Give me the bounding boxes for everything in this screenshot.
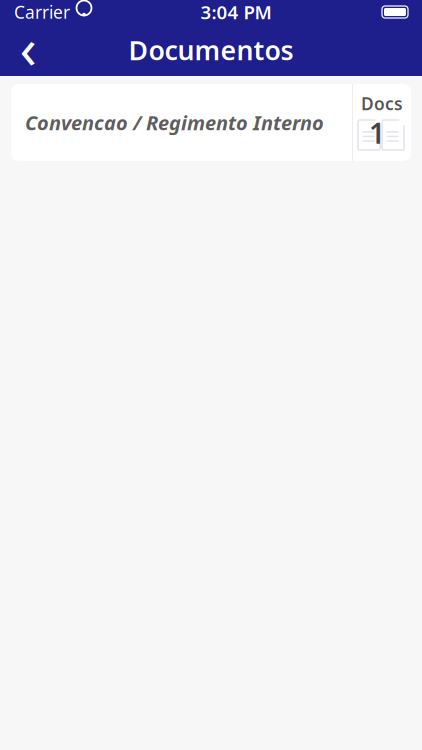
staticText: 1 bbox=[369, 114, 385, 152]
staticText: Documentos bbox=[128, 32, 293, 68]
staticText: Docs bbox=[361, 92, 403, 115]
staticText: Carrier bbox=[14, 0, 70, 23]
staticText: Convencao / Regimento Interno bbox=[25, 109, 324, 136]
staticText: 3:04 PM bbox=[200, 0, 271, 24]
staticText: ‹ bbox=[19, 10, 36, 84]
button[interactable]: Convencao / Regimento Interno bbox=[11, 84, 411, 161]
button[interactable]: Back bbox=[6, 28, 50, 72]
